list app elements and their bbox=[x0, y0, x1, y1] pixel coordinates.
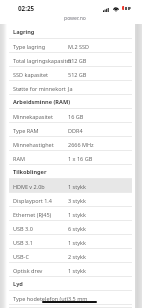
staticText: 02:25 bbox=[18, 4, 35, 13]
staticText: 16 GB bbox=[68, 113, 84, 120]
staticText: Lagring bbox=[13, 28, 35, 36]
staticText: 1 stykk bbox=[68, 211, 86, 218]
button[interactable]: USB-C bbox=[0, 249, 142, 263]
staticText: Tilkoblinger bbox=[13, 168, 47, 176]
staticText: Type lagring bbox=[13, 43, 46, 50]
other: Battery bbox=[122, 6, 130, 10]
staticText: power.no bbox=[64, 15, 86, 22]
staticText: Displayport 1.4 bbox=[13, 197, 52, 204]
button[interactable]: Type mikrofon (inn) bbox=[0, 305, 142, 308]
button[interactable]: Arbeidsminne (RAM) bbox=[0, 95, 142, 109]
staticText: Type mikrofon (inn) bbox=[13, 305, 64, 308]
button[interactable]: Minnehastighet bbox=[0, 137, 142, 151]
button[interactable]: Ethernet (RJ45) bbox=[0, 207, 142, 221]
staticText: HDMI v 2.0b bbox=[13, 183, 45, 190]
button[interactable]: SSD kapasitet bbox=[0, 67, 142, 81]
staticText: Ethernet (RJ45) bbox=[13, 211, 52, 218]
staticText: USB 3.0 bbox=[13, 225, 33, 232]
staticText: 2 stykk bbox=[68, 253, 86, 260]
button[interactable]: Støtte for minnekort bbox=[0, 81, 142, 95]
button[interactable]: Total lagringskapasitet bbox=[0, 53, 142, 67]
staticText: Ja bbox=[68, 85, 73, 92]
staticText: RAM bbox=[13, 155, 25, 162]
other: Wi-Fi bbox=[113, 7, 119, 11]
button[interactable]: Tilkoblinger bbox=[0, 165, 142, 179]
staticText: Arbeidsminne (RAM) bbox=[13, 98, 71, 106]
button[interactable]: Lyd bbox=[0, 277, 142, 291]
button[interactable]: Type lagring bbox=[0, 39, 142, 53]
staticText: USB 3.1 bbox=[13, 239, 33, 246]
staticText: SSD kapasitet bbox=[13, 71, 49, 78]
staticText: 512 GB bbox=[68, 57, 87, 64]
button[interactable]: Lagring bbox=[0, 25, 142, 39]
staticText: Type hodetelefon (ut) bbox=[13, 295, 69, 302]
staticText: Minnekapasitet bbox=[13, 113, 53, 120]
staticText: 1 stykk bbox=[68, 267, 86, 274]
button[interactable]: Type RAM bbox=[0, 123, 142, 137]
button[interactable]: Displayport 1.4 bbox=[0, 193, 142, 207]
staticText: 3.5 mm bbox=[68, 305, 88, 308]
staticText: 1 stykk bbox=[68, 239, 86, 246]
staticText: 6 stykk bbox=[68, 225, 86, 232]
staticText: Type RAM bbox=[13, 127, 39, 134]
staticText: 512 GB bbox=[68, 71, 87, 78]
button[interactable]: Minnekapasitet bbox=[0, 109, 142, 123]
staticText: USB-C bbox=[13, 253, 29, 260]
staticText: 1 x 16 GB bbox=[68, 155, 93, 162]
button[interactable]: USB 3.0 bbox=[0, 221, 142, 235]
staticText: Støtte for minnekort bbox=[13, 85, 66, 92]
button[interactable]: Optisk drev bbox=[0, 263, 142, 277]
staticText: Lyd bbox=[13, 280, 23, 288]
staticText: 1 stykk bbox=[68, 183, 86, 190]
staticText: Total lagringskapasitet bbox=[13, 57, 72, 64]
staticText: 2666 MHz bbox=[68, 141, 94, 148]
staticText: 3.5 mm bbox=[68, 295, 88, 302]
staticText: Optisk drev bbox=[13, 267, 43, 274]
button[interactable]: USB 3.1 bbox=[0, 235, 142, 249]
staticText: 3 stykk bbox=[68, 197, 86, 204]
button[interactable]: RAM bbox=[0, 151, 142, 165]
button[interactable]: HDMI v 2.0b bbox=[0, 179, 142, 193]
staticText: Minnehastighet bbox=[13, 141, 54, 148]
button[interactable]: Type hodetelefon (ut) bbox=[0, 291, 142, 305]
other: Cellular signal bbox=[103, 8, 109, 12]
staticText: DDR4 bbox=[68, 127, 83, 134]
staticText: M.2 SSD bbox=[68, 43, 90, 50]
